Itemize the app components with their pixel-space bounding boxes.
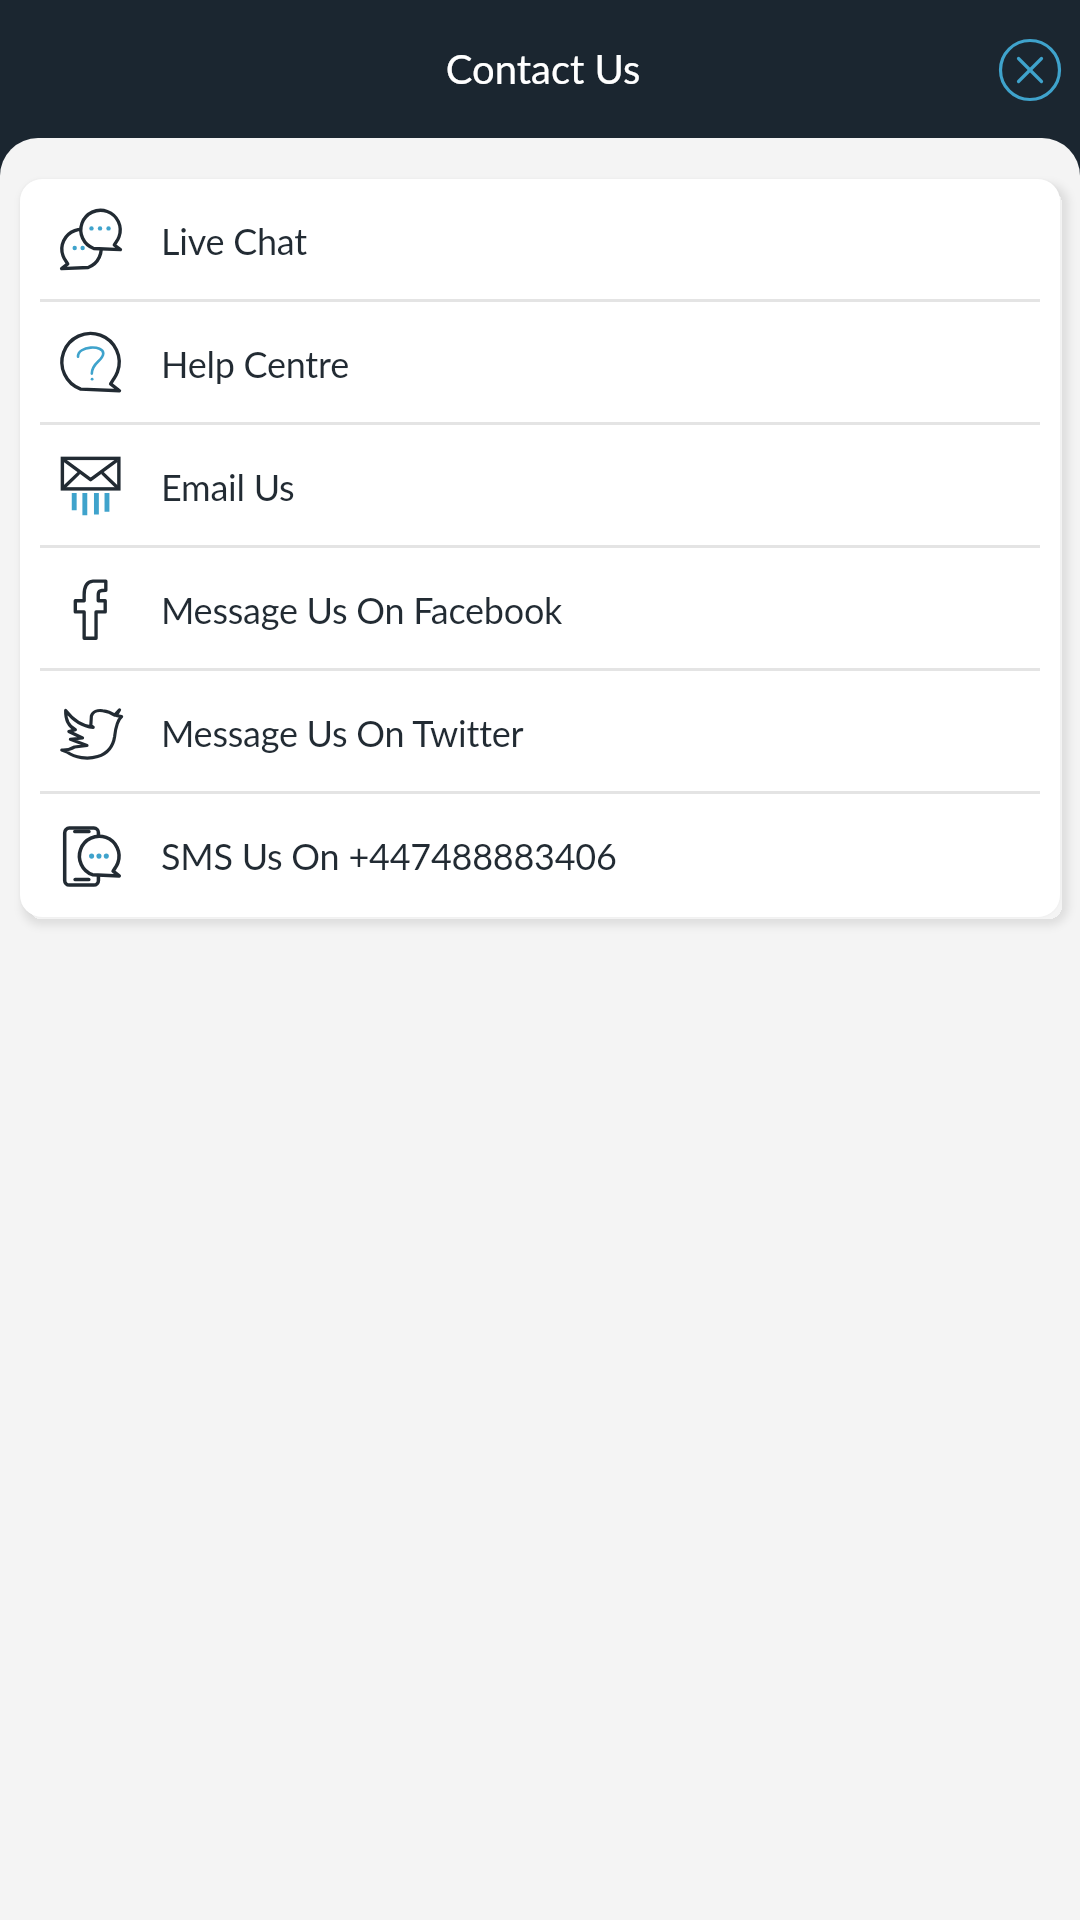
staticText: Help Centre	[161, 342, 349, 385]
staticText: Email Us	[161, 465, 295, 508]
staticText: Contact Us	[3, 45, 1080, 93]
button[interactable]: Message Us On Twitter	[20, 671, 1060, 794]
staticText: Message Us On Facebook	[161, 588, 563, 631]
button[interactable]: Message Us On Facebook	[20, 548, 1060, 671]
button[interactable]: Close	[996, 36, 1064, 104]
staticText: SMS Us On +447488883406	[161, 834, 617, 877]
button[interactable]: SMS Us On +447488883406	[20, 794, 1060, 917]
button[interactable]: Live Chat	[20, 179, 1060, 302]
button[interactable]: Email Us	[20, 425, 1060, 548]
button[interactable]: Help Centre	[20, 302, 1060, 425]
staticText: Live Chat	[161, 219, 307, 262]
staticText: Message Us On Twitter	[161, 711, 524, 754]
